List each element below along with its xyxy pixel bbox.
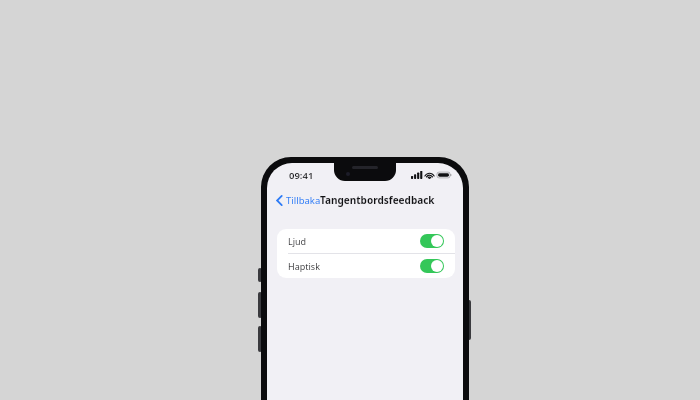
button[interactable]: Ljud <box>277 229 455 253</box>
button[interactable]: Toggle on <box>420 234 444 248</box>
button[interactable]: Tillbaka <box>273 191 324 210</box>
staticText: Tillbaka <box>286 194 321 207</box>
staticText: Tangentbordsfeedback <box>320 193 435 207</box>
staticText: Haptisk <box>288 260 320 272</box>
button[interactable]: Haptisk <box>277 254 455 278</box>
button[interactable]: Toggle on <box>420 259 444 273</box>
staticText: 09:41 <box>289 169 314 182</box>
staticText: Ljud <box>288 235 307 247</box>
